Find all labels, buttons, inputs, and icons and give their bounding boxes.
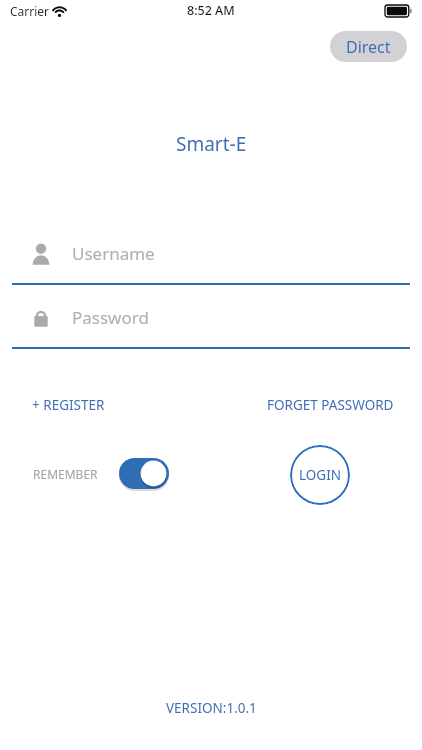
- staticText: VERSION:1.0.1: [166, 699, 257, 717]
- staticText: Smart-E: [176, 131, 247, 157]
- staticText: Carrier: [10, 3, 50, 19]
- other: Password: [29, 306, 53, 330]
- staticText: Direct: [346, 36, 391, 58]
- button[interactable]: REMEMBER: [33, 458, 169, 489]
- button[interactable]: Direct: [330, 31, 407, 62]
- staticText: Password: [72, 306, 149, 329]
- button[interactable]: FORGET PASSWORD: [267, 396, 394, 414]
- other: User: [29, 242, 53, 266]
- staticText: FORGET PASSWORD: [267, 396, 394, 414]
- staticText: LOGIN: [299, 466, 342, 484]
- staticText: 8:52 AM: [187, 2, 235, 19]
- button[interactable]: LOGIN: [290, 445, 350, 505]
- staticText: Username: [72, 242, 155, 265]
- staticText: REMEMBER: [33, 466, 98, 482]
- staticText: + REGISTER: [32, 396, 105, 414]
- button[interactable]: + REGISTER: [32, 396, 105, 414]
- button[interactable]: User: [12, 231, 410, 285]
- button[interactable]: Password: [12, 295, 410, 349]
